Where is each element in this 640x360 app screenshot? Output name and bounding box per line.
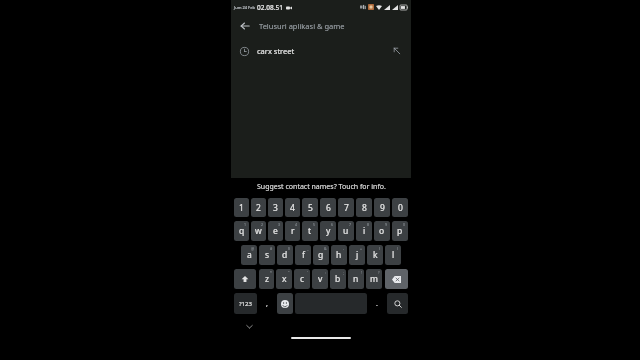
button[interactable]: z bbox=[259, 269, 274, 289]
button[interactable]: Back bbox=[235, 16, 255, 36]
button[interactable]: r bbox=[285, 221, 300, 241]
staticText: n bbox=[353, 273, 359, 285]
button[interactable]: j bbox=[349, 245, 365, 265]
button[interactable]: o bbox=[374, 221, 390, 241]
staticText: 6 bbox=[326, 202, 331, 214]
button[interactable]: p bbox=[392, 221, 408, 241]
staticText: c bbox=[300, 273, 305, 285]
button[interactable]: f bbox=[295, 245, 311, 265]
staticText: 2 bbox=[256, 202, 261, 214]
button[interactable]: 8 bbox=[356, 198, 372, 217]
button[interactable]: h bbox=[331, 245, 347, 265]
staticText: u bbox=[343, 225, 349, 237]
staticText: 02.08.51 bbox=[257, 3, 283, 12]
staticText: 8 bbox=[362, 202, 367, 214]
button[interactable]: Suggest contact names? Touch for info. bbox=[231, 178, 411, 196]
button[interactable]: d bbox=[277, 245, 293, 265]
staticText: + bbox=[360, 246, 363, 251]
button[interactable]: c bbox=[294, 269, 310, 289]
button[interactable]: 5 bbox=[302, 198, 318, 217]
staticText: 1 bbox=[244, 222, 247, 227]
button[interactable]: u bbox=[338, 221, 354, 241]
staticText: 4 bbox=[290, 202, 295, 214]
button[interactable]: x bbox=[276, 269, 292, 289]
button[interactable]: b bbox=[330, 269, 346, 289]
button[interactable]: 3 bbox=[268, 198, 283, 217]
staticText: z bbox=[265, 273, 269, 285]
staticText: , bbox=[266, 299, 268, 309]
button[interactable]: 0 bbox=[392, 198, 408, 217]
staticText: - bbox=[343, 246, 345, 251]
staticText: Telusuri aplikasi & game bbox=[259, 21, 345, 31]
button[interactable]: n bbox=[348, 269, 364, 289]
staticText: 2 bbox=[261, 222, 264, 227]
staticText: y bbox=[326, 225, 331, 237]
button[interactable]: t bbox=[302, 221, 318, 241]
staticText: 7 bbox=[344, 202, 349, 214]
button[interactable]: Telusuri aplikasi & game bbox=[259, 14, 411, 38]
staticText: i bbox=[363, 225, 366, 237]
button[interactable]: 9 bbox=[374, 198, 390, 217]
staticText: Jum 24 Feb bbox=[234, 5, 255, 10]
staticText: ( bbox=[379, 246, 381, 251]
staticText: ' bbox=[307, 270, 308, 275]
button[interactable]: 6 bbox=[320, 198, 336, 217]
staticText: * bbox=[270, 270, 272, 275]
button[interactable]: w bbox=[251, 221, 266, 241]
staticText: : bbox=[325, 270, 326, 275]
staticText: m bbox=[370, 273, 378, 285]
staticText: l bbox=[392, 249, 395, 261]
button[interactable]: q bbox=[234, 221, 249, 241]
button[interactable]: l bbox=[385, 245, 401, 265]
staticText: " bbox=[288, 270, 290, 275]
button[interactable]: ?123 bbox=[234, 293, 257, 314]
button[interactable]: Hide keyboard bbox=[243, 320, 255, 332]
staticText: _ bbox=[307, 246, 309, 251]
button[interactable]: 1 bbox=[234, 198, 249, 217]
staticText: # bbox=[270, 246, 273, 251]
staticText: o bbox=[379, 225, 385, 237]
staticText: t bbox=[308, 225, 312, 237]
button[interactable]: s bbox=[259, 245, 275, 265]
staticText: d bbox=[282, 249, 288, 261]
staticText: & bbox=[324, 246, 327, 251]
staticText: ) bbox=[397, 246, 399, 251]
button[interactable]: y bbox=[320, 221, 336, 241]
staticText: a bbox=[247, 249, 252, 261]
staticText: carx street bbox=[257, 46, 390, 56]
button[interactable]: Emoji bbox=[277, 293, 293, 314]
staticText: e bbox=[273, 225, 278, 237]
staticText: 5 bbox=[308, 202, 313, 214]
button[interactable]: a bbox=[241, 245, 257, 265]
staticText: r bbox=[291, 225, 295, 237]
button[interactable]: g bbox=[313, 245, 329, 265]
staticText: x bbox=[282, 273, 287, 285]
button[interactable]: m bbox=[366, 269, 382, 289]
button[interactable]: 4 bbox=[285, 198, 300, 217]
staticText: k bbox=[373, 249, 378, 261]
staticText: ? bbox=[378, 270, 380, 275]
button[interactable]: Shift bbox=[234, 269, 256, 289]
staticText: 0 bbox=[398, 202, 403, 214]
button[interactable]: Backspace bbox=[385, 269, 408, 289]
staticText: ?123 bbox=[239, 300, 252, 308]
button[interactable]: Search bbox=[387, 293, 408, 314]
button[interactable]: , bbox=[259, 293, 275, 314]
button[interactable]: i bbox=[356, 221, 372, 241]
button[interactable]: Insert suggestion bbox=[390, 44, 404, 58]
button[interactable]: v bbox=[312, 269, 328, 289]
button[interactable]: e bbox=[268, 221, 283, 241]
button[interactable]: k bbox=[367, 245, 383, 265]
button[interactable]: . bbox=[369, 293, 385, 314]
staticText: 7 bbox=[349, 222, 352, 227]
button[interactable]: 7 bbox=[338, 198, 354, 217]
button[interactable]: 2 bbox=[251, 198, 266, 217]
staticText: Suggest contact names? Touch for info. bbox=[257, 182, 386, 192]
button[interactable]: carx street bbox=[231, 40, 411, 62]
staticText: 3 bbox=[278, 222, 281, 227]
staticText: ! bbox=[361, 270, 362, 275]
staticText: 9 bbox=[380, 202, 385, 214]
staticText: h bbox=[336, 249, 342, 261]
staticText: $ bbox=[288, 246, 291, 251]
